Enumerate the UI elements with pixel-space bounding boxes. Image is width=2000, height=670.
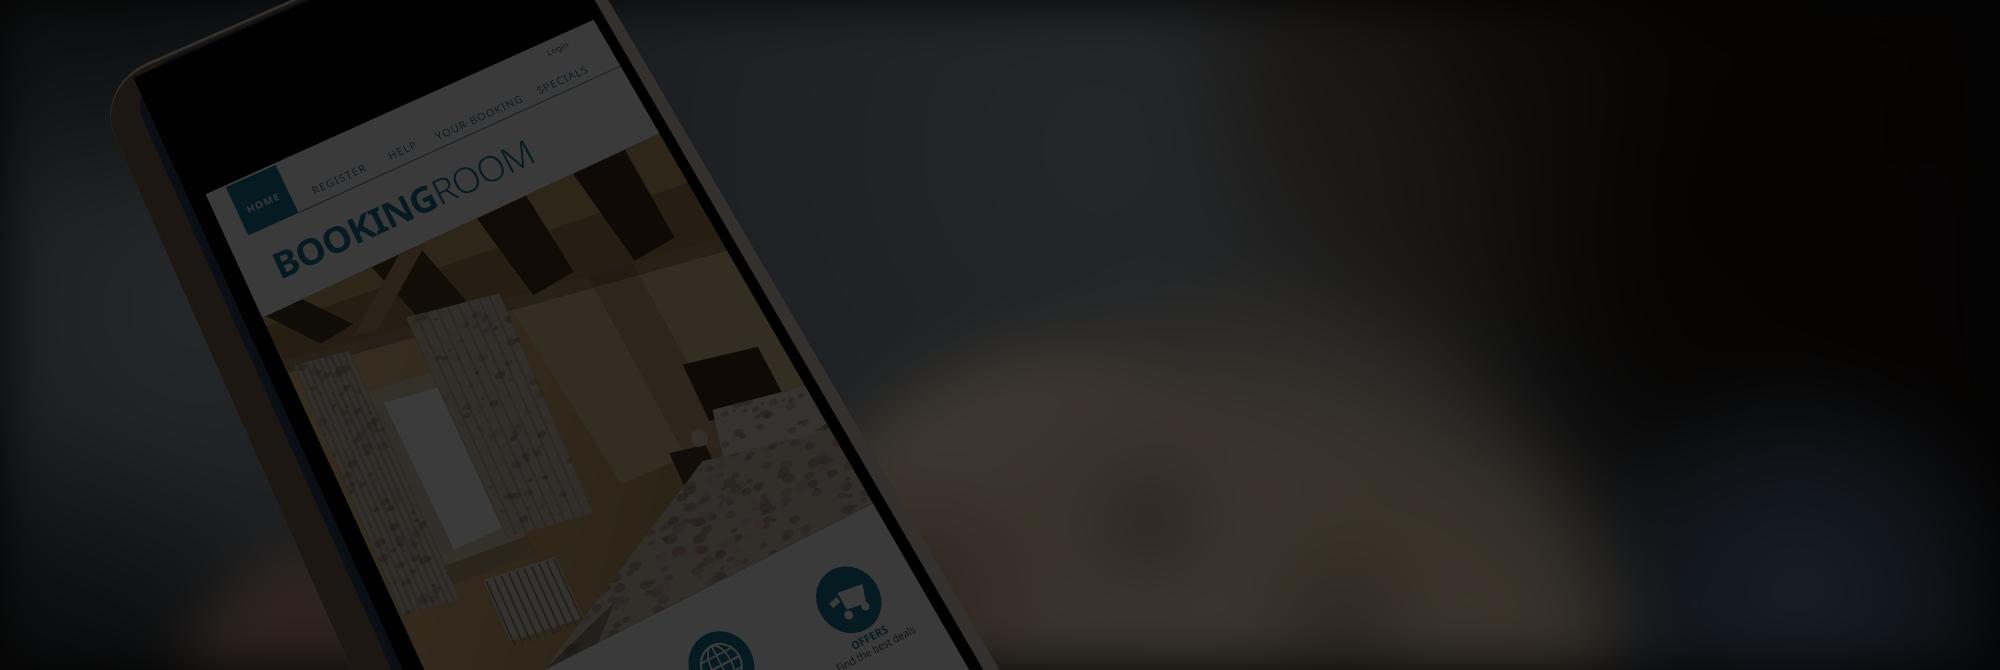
button[interactable]: BookingRoom hotel app promo (0, 0, 2000, 670)
